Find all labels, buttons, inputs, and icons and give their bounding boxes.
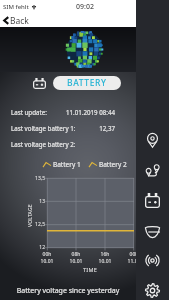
button[interactable]: Route: [136, 155, 169, 185]
staticText: 13: [30, 198, 45, 205]
button[interactable]: Signal: [136, 245, 169, 275]
button[interactable]: Battery: [136, 185, 169, 215]
staticText: 09:02: [76, 2, 94, 12]
staticText: VOLTAGE: [27, 204, 34, 227]
staticText: Last voltage battery 2:: [11, 140, 76, 148]
staticText: 11.01.2019 08:44: [55, 108, 115, 116]
button[interactable]: Location: [136, 125, 169, 155]
staticText: Battery 1: [53, 160, 81, 169]
staticText: Battery 2: [99, 160, 127, 169]
staticText: 12,5: [30, 221, 45, 228]
staticText: Last update:: [11, 108, 47, 116]
staticText: BATTERY: [67, 77, 107, 89]
staticText: Battery voltage since yesterday: [0, 286, 136, 296]
staticText: 13,5: [30, 175, 45, 182]
button[interactable]: Settings: [136, 275, 169, 300]
staticText: 00h 10.01: [37, 251, 57, 264]
staticText: 16h 10.01: [95, 251, 115, 264]
staticText: SIM fehlt: [3, 3, 29, 11]
staticText: 00h 11.01: [124, 251, 144, 264]
staticText: Last voltage battery 1:: [11, 124, 76, 132]
staticText: 12,37: [55, 124, 115, 132]
staticText: Back: [10, 15, 29, 25]
button[interactable]: Back: [0, 13, 37, 27]
button[interactable]: Vehicle: [136, 215, 169, 245]
button[interactable]: BATTERY: [53, 76, 121, 90]
staticText: 08h 10.01: [66, 251, 86, 264]
staticText: 12: [30, 244, 45, 251]
staticText: TIME: [70, 266, 110, 273]
